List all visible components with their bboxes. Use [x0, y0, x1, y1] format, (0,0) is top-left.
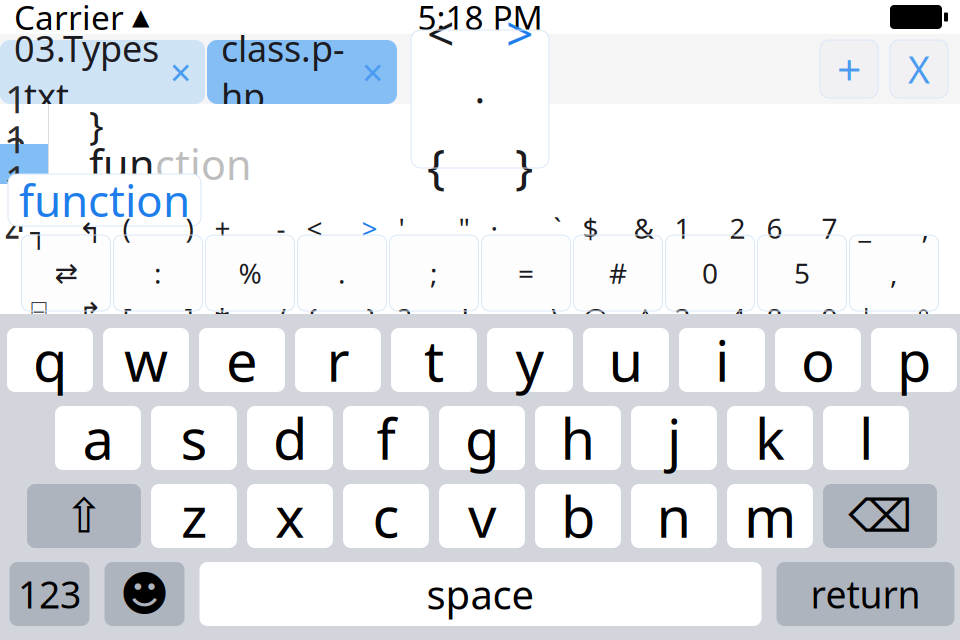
staticText: =	[518, 254, 534, 292]
staticText: return	[810, 569, 920, 619]
staticText: }	[89, 178, 104, 230]
button[interactable]: ·	[481, 235, 570, 311]
button[interactable]: Close file	[890, 40, 948, 98]
staticText: v	[468, 479, 496, 553]
button[interactable]: i	[679, 328, 765, 392]
staticText: ↱	[78, 297, 101, 329]
button[interactable]: s	[151, 406, 237, 470]
staticText: x	[275, 479, 305, 553]
staticText: w	[124, 323, 168, 397]
staticText: +	[214, 209, 230, 246]
staticText: 03.Types.txt	[14, 24, 159, 120]
button[interactable]: p	[871, 328, 957, 392]
button[interactable]: class.php	[207, 40, 397, 104]
staticText: _	[858, 209, 870, 246]
staticText: s	[180, 401, 207, 475]
staticText: ⇧	[64, 489, 104, 543]
staticText: ↰	[78, 217, 101, 249]
button[interactable]: space	[199, 562, 761, 626]
staticText: h	[560, 401, 595, 475]
staticText: Carrier	[14, 0, 124, 39]
staticText: ▲	[132, 4, 149, 30]
button[interactable]: Return	[776, 562, 954, 626]
button[interactable]: Bracket pad	[411, 30, 549, 168]
button[interactable]: r	[295, 328, 381, 392]
staticText: p	[897, 323, 931, 397]
button[interactable]: y	[487, 328, 573, 392]
staticText: ·	[490, 209, 498, 246]
button[interactable]: _	[849, 235, 938, 311]
staticText: °	[917, 300, 929, 337]
staticText: 4	[729, 300, 745, 337]
button[interactable]: t	[391, 328, 477, 392]
staticText: 0	[702, 254, 718, 292]
button[interactable]: x	[247, 484, 333, 548]
staticText: fun	[89, 137, 155, 191]
button[interactable]: e	[199, 328, 285, 392]
button[interactable]: New file	[820, 40, 878, 98]
staticText: ⌫	[848, 490, 912, 542]
button[interactable]: Delete	[823, 484, 937, 548]
staticText: ^	[637, 300, 653, 337]
staticText: *	[214, 300, 229, 337]
staticText: 5:18 PM	[417, 0, 542, 39]
staticText: j	[667, 401, 681, 475]
button[interactable]: j	[631, 406, 717, 470]
button[interactable]: $	[573, 235, 662, 311]
button[interactable]: k	[727, 406, 813, 470]
button[interactable]: +	[205, 235, 294, 311]
staticText: %	[238, 254, 261, 292]
staticText: @	[582, 300, 607, 337]
staticText: \	[551, 300, 561, 337]
staticText: ⇄	[54, 257, 77, 289]
button[interactable]: 1	[665, 235, 754, 311]
staticText: a	[82, 401, 113, 475]
staticText: {	[306, 300, 317, 337]
button[interactable]: 6	[757, 235, 846, 311]
staticText: e	[226, 323, 258, 397]
button[interactable]: l	[823, 406, 909, 470]
button[interactable]: 03.Types.txt	[0, 40, 205, 104]
button[interactable]: function	[8, 174, 201, 226]
button[interactable]: v	[439, 484, 525, 548]
button[interactable]: Numbers	[9, 562, 89, 626]
staticText: 13	[5, 113, 27, 215]
button[interactable]: f	[343, 406, 429, 470]
staticText: ~	[490, 300, 506, 337]
staticText: ·	[474, 72, 485, 125]
staticText: ×	[170, 47, 191, 97]
button[interactable]: ┐	[21, 235, 110, 311]
button[interactable]: w	[103, 328, 189, 392]
button[interactable]: q	[7, 328, 93, 392]
button[interactable]: b	[535, 484, 621, 548]
staticText: }	[89, 98, 104, 150]
button[interactable]: m	[727, 484, 813, 548]
button[interactable]: <	[297, 235, 386, 311]
staticText: 12	[5, 73, 27, 175]
button[interactable]: '	[389, 235, 478, 311]
button[interactable]: h	[535, 406, 621, 470]
button[interactable]: c	[343, 484, 429, 548]
button[interactable]: d	[247, 406, 333, 470]
staticText: :	[154, 254, 162, 292]
staticText: .	[338, 254, 346, 292]
staticText: y	[515, 323, 544, 397]
button[interactable]: Shift	[27, 484, 141, 548]
staticText: )	[185, 209, 193, 246]
staticText: 14	[5, 153, 27, 255]
staticText: <	[306, 209, 322, 246]
button[interactable]: Emoji	[104, 562, 184, 626]
staticText: b	[561, 479, 595, 553]
button[interactable]: z	[151, 484, 237, 548]
button[interactable]: o	[775, 328, 861, 392]
button[interactable]: u	[583, 328, 669, 392]
button[interactable]: g	[439, 406, 525, 470]
staticText: {	[427, 134, 445, 197]
button[interactable]: a	[55, 406, 141, 470]
button[interactable]: (	[113, 235, 202, 311]
staticText: X	[908, 44, 930, 94]
staticText: /	[275, 300, 285, 337]
staticText: c	[372, 479, 399, 553]
button[interactable]: n	[631, 484, 717, 548]
staticText: ,	[921, 209, 929, 246]
